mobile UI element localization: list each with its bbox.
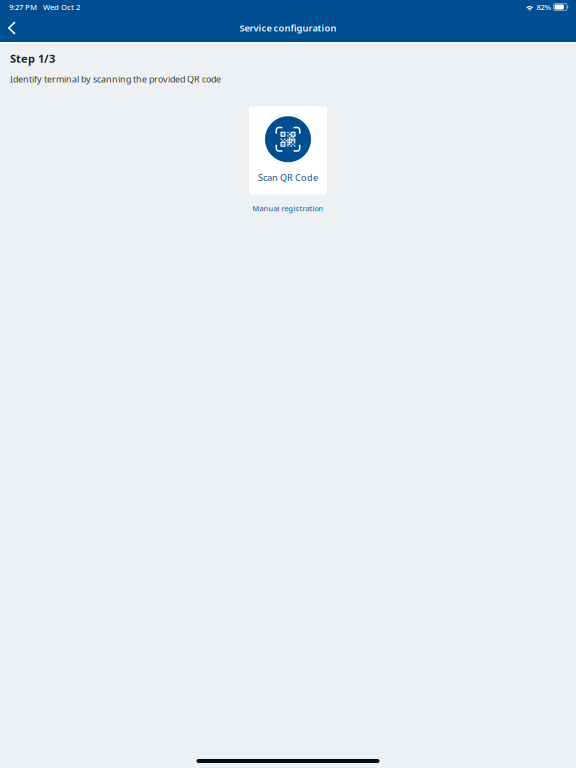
button[interactable]: Back xyxy=(0,17,26,39)
staticText: 82% xyxy=(536,2,551,12)
staticText: Identify terminal by scanning the provid… xyxy=(10,73,221,85)
staticText: Manual registration xyxy=(252,204,323,213)
staticText: 9:27 PM xyxy=(9,2,37,12)
staticText: Service configuration xyxy=(239,22,336,34)
staticText: Step 1/3 xyxy=(10,51,55,66)
button[interactable]: Scan QR Code xyxy=(249,106,327,194)
staticText: Wed Oct 2 xyxy=(43,2,80,12)
staticText: Scan QR Code xyxy=(258,171,318,183)
button[interactable]: Manual registration xyxy=(246,195,329,218)
